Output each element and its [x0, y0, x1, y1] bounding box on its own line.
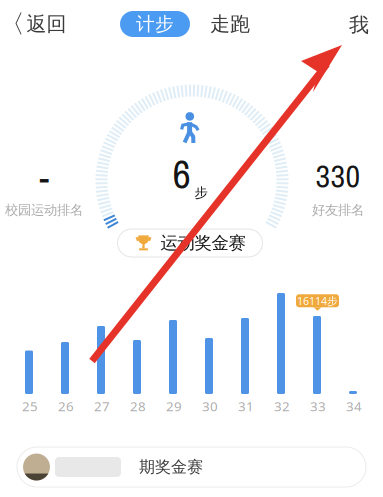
button[interactable]: 期奖金赛 — [17, 447, 366, 487]
staticText: 29 — [166, 397, 182, 415]
staticText: 期奖金赛 — [139, 457, 203, 477]
staticText: 16114步 — [297, 294, 338, 308]
button[interactable]: 我 — [336, 6, 382, 44]
staticText: 32 — [274, 397, 290, 415]
staticText: 好友排名 — [312, 202, 364, 218]
staticText: 26 — [58, 397, 74, 415]
staticText: - — [39, 155, 48, 201]
staticText: 我 — [349, 13, 369, 37]
staticText: 25 — [22, 397, 38, 415]
staticText: 33 — [310, 397, 326, 415]
staticText: 返回 — [26, 12, 66, 36]
staticText: 运动奖金赛 — [160, 232, 245, 254]
staticText: 30 — [202, 397, 218, 415]
staticText: 计步 — [136, 12, 174, 35]
staticText: 31 — [238, 397, 254, 415]
button[interactable]: 运动奖金赛 — [117, 229, 262, 257]
button[interactable]: 走跑 — [202, 7, 258, 41]
staticText: 走跑 — [210, 12, 250, 36]
button[interactable]: 计步 — [120, 11, 190, 37]
staticText: 27 — [94, 397, 110, 415]
staticText: 〈 — [0, 8, 24, 39]
staticText: 34 — [346, 397, 362, 415]
staticText: 28 — [130, 397, 146, 415]
staticText: 步 — [194, 185, 207, 201]
staticText: 6 — [172, 147, 190, 201]
staticText: 校园运动排名 — [5, 202, 83, 218]
staticText: 330 — [315, 154, 360, 197]
button[interactable]: 〈 — [0, 5, 66, 43]
